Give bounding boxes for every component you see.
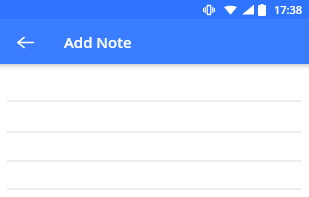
staticText: Add Note <box>64 32 132 52</box>
button[interactable] <box>0 70 309 197</box>
button[interactable]: Navigate up <box>9 26 41 58</box>
staticText: 17:38 <box>274 2 303 17</box>
